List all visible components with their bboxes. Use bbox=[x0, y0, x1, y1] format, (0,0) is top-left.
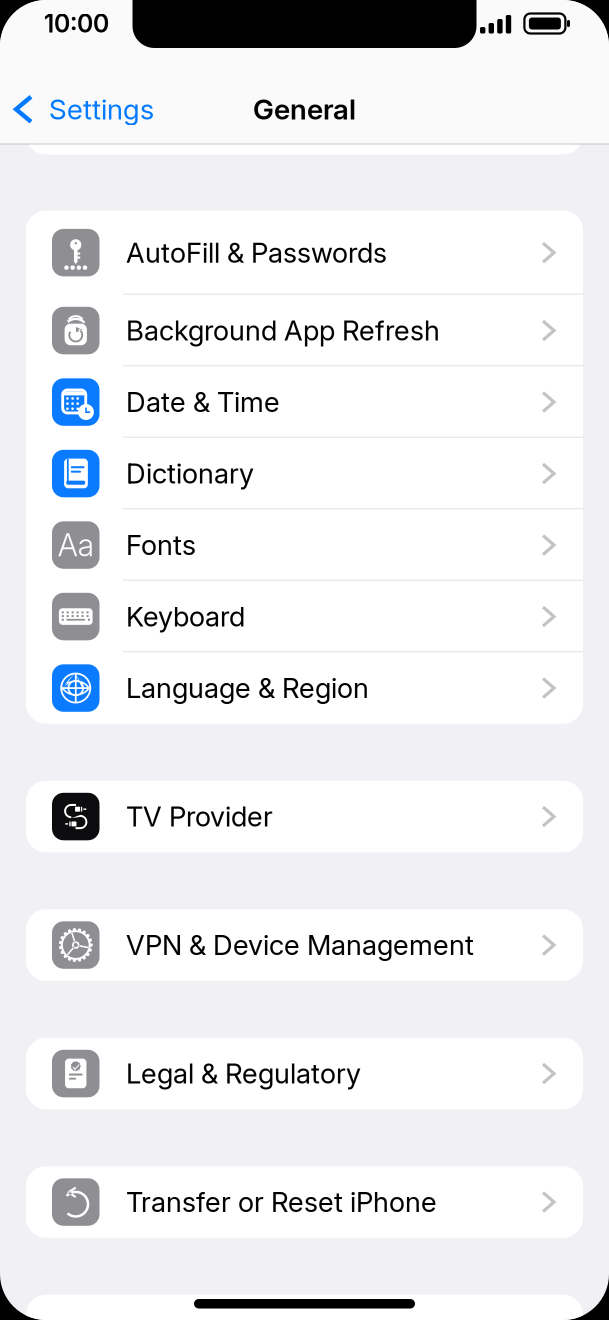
staticText: Date & Time bbox=[126, 385, 280, 419]
button[interactable]: Dictionary bbox=[26, 438, 583, 509]
staticText: Background App Refresh bbox=[126, 314, 440, 347]
staticText: Language & Region bbox=[126, 671, 369, 705]
staticText: Legal & Regulatory bbox=[126, 1057, 361, 1090]
button[interactable]: VPN & Device Management bbox=[26, 909, 583, 981]
button[interactable]: Transfer or Reset iPhone bbox=[26, 1166, 583, 1238]
button[interactable]: AutoFill & Passwords bbox=[26, 210, 583, 295]
staticText: AutoFill & Passwords bbox=[126, 236, 387, 269]
button[interactable]: Settings bbox=[0, 82, 154, 136]
button[interactable]: Background App Refresh bbox=[26, 295, 583, 366]
staticText: VPN & Device Management bbox=[126, 928, 474, 962]
staticText: Fonts bbox=[126, 528, 196, 562]
staticText: Transfer or Reset iPhone bbox=[126, 1185, 437, 1219]
staticText: Aa bbox=[58, 526, 94, 564]
staticText: Dictionary bbox=[126, 457, 254, 490]
button[interactable]: Language & Region bbox=[26, 652, 583, 724]
button[interactable]: TV Provider bbox=[26, 781, 583, 852]
button[interactable]: Date & Time bbox=[26, 366, 583, 438]
staticText: General bbox=[253, 92, 356, 126]
staticText: 10:00 bbox=[44, 8, 109, 38]
staticText: TV Provider bbox=[126, 800, 273, 833]
button[interactable]: Legal & Regulatory bbox=[26, 1038, 583, 1109]
staticText: Settings bbox=[49, 92, 154, 126]
staticText: Keyboard bbox=[126, 600, 245, 633]
button[interactable]: Keyboard bbox=[26, 581, 583, 652]
button[interactable]: Aa bbox=[26, 509, 583, 581]
